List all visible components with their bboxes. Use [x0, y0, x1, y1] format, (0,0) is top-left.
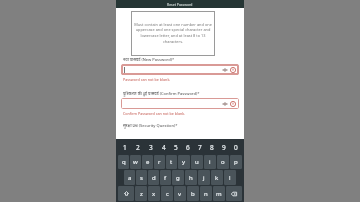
staticText: b [191, 190, 195, 198]
button[interactable]: l [224, 170, 236, 185]
button[interactable]: Show password [121, 98, 239, 109]
staticText: Confirm Password can not be blank. [123, 111, 186, 116]
staticText: i [209, 158, 211, 166]
button[interactable]: z [135, 186, 147, 201]
button[interactable]: 4 [157, 140, 170, 154]
button[interactable]: d [148, 170, 159, 185]
button[interactable]: 6 [182, 140, 194, 154]
button[interactable]: a [124, 170, 135, 185]
staticText: सुरक्षा प्रश्न (Security Question)* [123, 123, 178, 128]
staticText: g [176, 174, 180, 182]
button[interactable]: Show password [221, 100, 228, 107]
staticText: k [215, 174, 219, 182]
staticText: q [122, 158, 126, 166]
staticText: 6 [186, 143, 190, 152]
staticText: Must contain at least one number and one… [134, 22, 212, 45]
button[interactable]: c [161, 186, 173, 201]
other: Error [229, 100, 236, 107]
staticText: a [128, 174, 132, 182]
button[interactable]: Show password [221, 66, 228, 73]
staticText: y [182, 158, 186, 166]
staticText: l [229, 174, 231, 182]
button[interactable]: s [136, 170, 147, 185]
staticText: x [152, 190, 156, 198]
button[interactable]: m [213, 186, 225, 201]
button[interactable]: o [217, 155, 229, 169]
button[interactable]: r [154, 155, 165, 169]
button[interactable]: h [185, 170, 197, 185]
staticText: पुष्टिकरण की हुई पासवर्ड (Confirm Passwo… [123, 91, 200, 96]
staticText: c [166, 190, 169, 198]
staticText: r [158, 158, 161, 166]
button[interactable]: g [172, 170, 184, 185]
staticText: o [221, 158, 225, 166]
staticText: t [170, 158, 173, 166]
staticText: Reset Password [167, 2, 193, 7]
staticText: Password can not be blank. [123, 77, 171, 82]
button[interactable]: 8 [206, 140, 218, 154]
button[interactable]: q [118, 155, 129, 169]
staticText: 0 [234, 143, 238, 152]
staticText: j [203, 174, 205, 182]
button[interactable]: 7 [194, 140, 206, 154]
button[interactable]: j [198, 170, 210, 185]
staticText: p [234, 158, 238, 166]
staticText: h [189, 174, 193, 182]
staticText: w [133, 158, 138, 166]
button[interactable]: i [204, 155, 216, 169]
button[interactable]: 1 [118, 140, 131, 154]
staticText: 9 [222, 143, 226, 152]
button[interactable]: 5 [170, 140, 182, 154]
button[interactable]: k [211, 170, 223, 185]
staticText: 7 [198, 143, 202, 152]
button[interactable]: y [178, 155, 190, 169]
staticText: e [146, 158, 150, 166]
button[interactable]: b [187, 186, 199, 201]
staticText: 1 [123, 143, 127, 152]
button[interactable]: Backspace [226, 186, 242, 201]
button[interactable]: u [191, 155, 203, 169]
staticText: d [152, 174, 156, 182]
button[interactable]: f [160, 170, 171, 185]
button[interactable]: 2 [131, 140, 144, 154]
button[interactable]: 0 [230, 140, 242, 154]
staticText: n [204, 190, 208, 198]
staticText: 4 [162, 143, 166, 152]
staticText: m [216, 190, 222, 198]
button[interactable]: p [230, 155, 242, 169]
button[interactable]: e [142, 155, 153, 169]
button[interactable]: 9 [218, 140, 230, 154]
staticText: v [178, 190, 182, 198]
button[interactable]: Show password [121, 64, 239, 75]
staticText: 3 [149, 143, 153, 152]
staticText: z [140, 190, 143, 198]
button[interactable]: 3 [144, 140, 157, 154]
other: Error [229, 66, 236, 73]
staticText: u [195, 158, 199, 166]
button[interactable]: v [174, 186, 186, 201]
staticText: s [140, 174, 143, 182]
button[interactable]: w [130, 155, 141, 169]
button[interactable]: Shift [118, 186, 134, 201]
staticText: 2 [136, 143, 140, 152]
staticText: 5 [174, 143, 178, 152]
staticText: नया पासवर्ड (New Password)* [123, 57, 175, 62]
button[interactable]: t [166, 155, 177, 169]
button[interactable]: x [148, 186, 160, 201]
button[interactable]: n [200, 186, 212, 201]
staticText: 8 [210, 143, 214, 152]
staticText: f [164, 174, 167, 182]
